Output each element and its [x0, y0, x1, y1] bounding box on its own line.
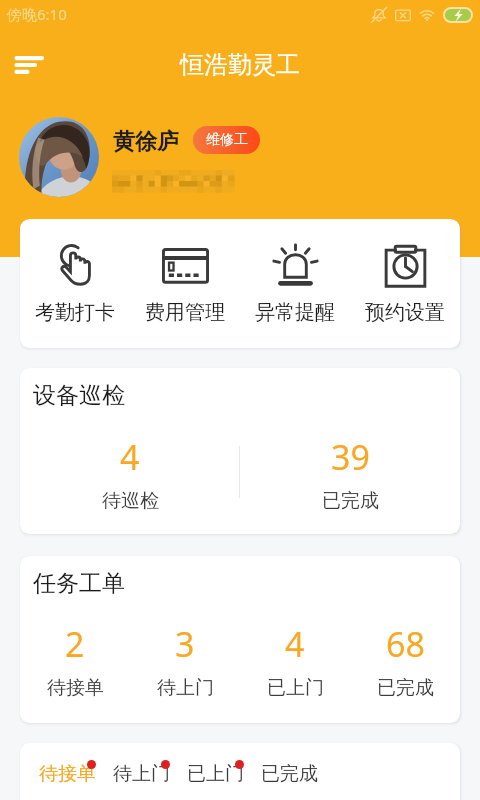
button[interactable]: 考勤打卡 [20, 219, 130, 348]
staticText: 4 [285, 621, 305, 667]
button[interactable]: 异常提醒 [240, 219, 350, 348]
staticText: 39 [331, 434, 370, 480]
button[interactable]: Profile photo [19, 117, 99, 197]
staticText: 费用管理 [145, 300, 225, 325]
button[interactable]: 3 [130, 621, 240, 700]
button[interactable]: 2 [20, 621, 130, 700]
staticText: 68 [386, 621, 425, 667]
staticText: 傍晚6:10 [7, 4, 67, 24]
staticText: 恒浩勤灵工 [180, 50, 300, 80]
staticText: 已上门 [267, 676, 324, 700]
staticText: 已完成 [377, 676, 434, 700]
button[interactable]: Menu [4, 40, 54, 90]
staticText: 设备巡检 [33, 381, 125, 410]
button[interactable]: 4 [20, 434, 240, 513]
staticText: 待巡检 [102, 489, 159, 513]
button[interactable]: 68 [350, 621, 460, 700]
button[interactable]: 预约设置 [350, 219, 460, 348]
staticText: 待接单 [47, 676, 104, 700]
button[interactable]: 维修工 [193, 126, 260, 154]
staticText: 已上门 [187, 762, 244, 786]
button[interactable]: 已上门 [183, 758, 248, 790]
staticText: 黄徐庐 [113, 128, 179, 156]
button[interactable]: 费用管理 [130, 219, 240, 348]
button[interactable]: 39 [240, 434, 460, 513]
button[interactable]: 待上门 [109, 758, 174, 790]
button[interactable]: 已完成 [257, 758, 322, 790]
staticText: 维修工 [206, 131, 248, 149]
staticText: 3 [175, 621, 195, 667]
button[interactable]: 4 [240, 621, 350, 700]
staticText: 4 [120, 434, 140, 480]
staticText: 待上门 [113, 762, 170, 786]
staticText: 待上门 [157, 676, 214, 700]
staticText: 已完成 [261, 762, 318, 786]
staticText: 预约设置 [365, 300, 445, 325]
staticText: 异常提醒 [255, 300, 335, 325]
staticText: 任务工单 [33, 569, 125, 598]
staticText: 待接单 [39, 762, 96, 786]
button[interactable]: 待接单 [35, 758, 100, 790]
staticText: 已完成 [322, 489, 379, 513]
staticText: 考勤打卡 [35, 300, 115, 325]
staticText: 2 [65, 621, 85, 667]
